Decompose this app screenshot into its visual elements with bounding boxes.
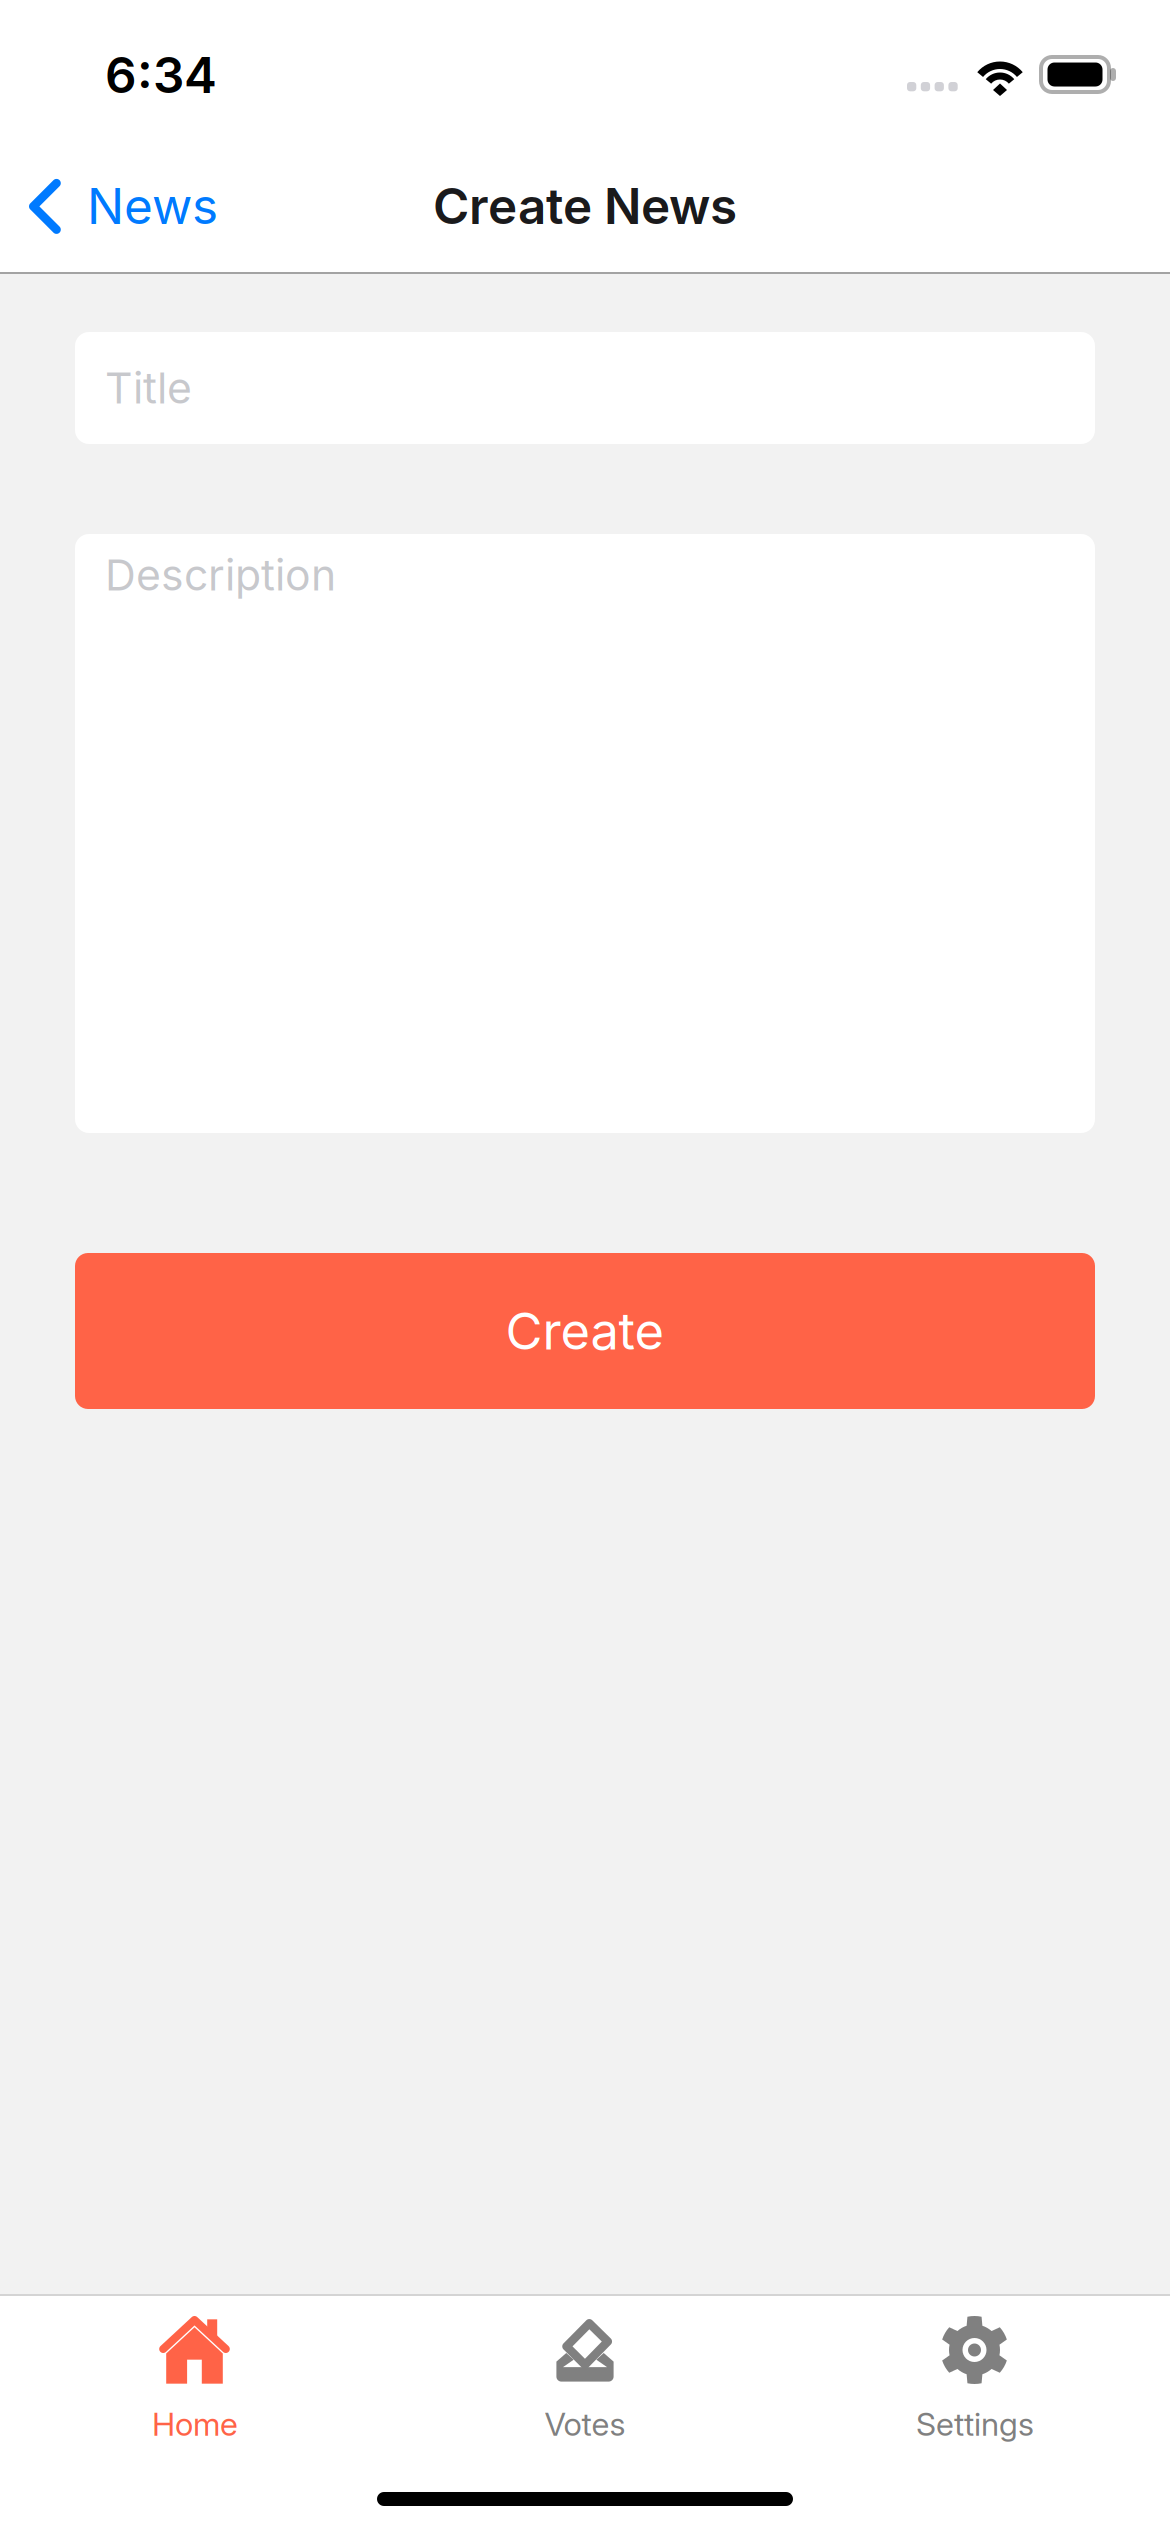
button[interactable]: Home xyxy=(0,2294,390,2464)
button[interactable]: Settings xyxy=(780,2294,1170,2464)
staticText: Description xyxy=(105,549,336,601)
staticText: Votes xyxy=(544,2405,625,2443)
staticText: Create xyxy=(505,1300,664,1362)
button[interactable]: News xyxy=(0,130,300,270)
staticText: Title xyxy=(105,362,192,414)
button[interactable]: Title xyxy=(75,332,1095,444)
button[interactable]: Create xyxy=(75,1253,1095,1409)
staticText: Home xyxy=(152,2405,238,2443)
staticText: Create News xyxy=(433,176,737,236)
staticText: Settings xyxy=(916,2405,1034,2443)
staticText: 6:34 xyxy=(105,45,217,105)
staticText: News xyxy=(87,176,218,236)
button[interactable]: Description xyxy=(75,534,1095,1133)
button[interactable]: Votes xyxy=(390,2294,780,2464)
